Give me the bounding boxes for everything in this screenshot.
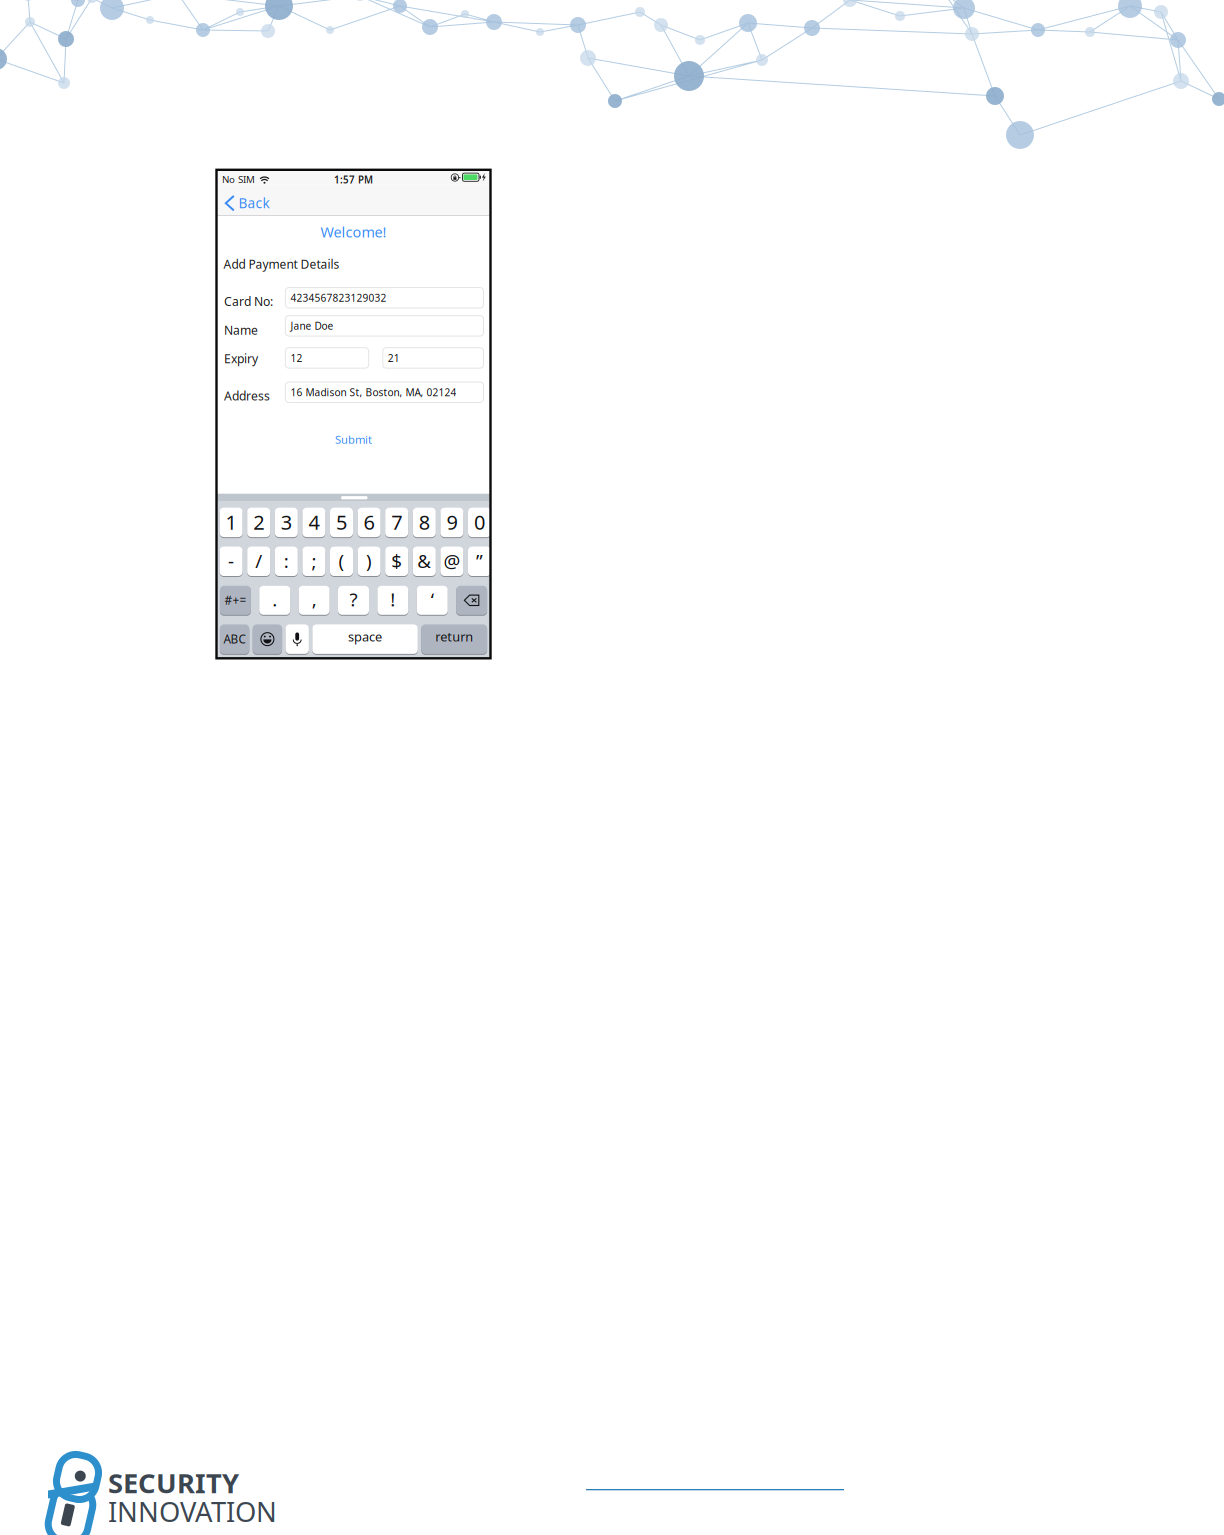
button[interactable]: 6 bbox=[358, 507, 381, 538]
button[interactable]: ; bbox=[302, 546, 325, 576]
staticText: - bbox=[228, 548, 234, 573]
button[interactable]: Submit bbox=[325, 427, 382, 452]
staticText: . bbox=[272, 587, 277, 612]
button[interactable]: $ bbox=[385, 546, 408, 576]
staticText: Welcome! bbox=[320, 222, 386, 242]
staticText: No SIM bbox=[222, 173, 255, 186]
staticText: @ bbox=[443, 548, 460, 573]
staticText: Card No: bbox=[224, 293, 273, 309]
staticText: 6 bbox=[364, 508, 375, 535]
button[interactable]: #+= bbox=[220, 585, 251, 615]
staticText: ; bbox=[311, 548, 316, 573]
staticText: ! bbox=[390, 587, 395, 612]
staticText: ABC bbox=[224, 631, 246, 647]
staticText: return bbox=[435, 628, 473, 645]
staticText: 9 bbox=[446, 508, 457, 535]
button[interactable]: ! bbox=[377, 585, 408, 615]
button[interactable]: - bbox=[220, 546, 243, 576]
button[interactable]: ‘ bbox=[417, 585, 448, 615]
staticText: 1:57 PM bbox=[334, 173, 373, 186]
staticText: 1 bbox=[226, 508, 237, 535]
staticText: ? bbox=[349, 587, 357, 612]
button[interactable]: 3 bbox=[275, 507, 298, 538]
button[interactable]: . bbox=[259, 585, 290, 615]
button[interactable]: & bbox=[413, 546, 436, 576]
button[interactable]: Emoji bbox=[253, 624, 282, 654]
button[interactable]: space bbox=[312, 624, 418, 654]
staticText: ( bbox=[338, 548, 344, 573]
button[interactable]: Delete bbox=[456, 585, 487, 615]
staticText: 0 bbox=[474, 508, 485, 535]
button[interactable]: 8 bbox=[413, 507, 436, 538]
staticText: ) bbox=[366, 548, 372, 573]
button[interactable]: 1 bbox=[220, 507, 243, 538]
button[interactable]: , bbox=[299, 585, 330, 615]
staticText: / bbox=[255, 548, 262, 573]
button[interactable]: ABC bbox=[220, 624, 249, 654]
button[interactable]: 0 bbox=[468, 507, 491, 538]
staticText: Add Payment Details bbox=[223, 256, 339, 272]
button[interactable]: 5 bbox=[330, 507, 353, 538]
button[interactable]: ( bbox=[330, 546, 353, 576]
staticText: & bbox=[417, 548, 431, 573]
button[interactable]: @ bbox=[440, 546, 463, 576]
staticText: 12 bbox=[290, 351, 302, 365]
staticText: Back bbox=[238, 194, 269, 212]
staticText: 2 bbox=[253, 508, 264, 535]
button[interactable]: 7 bbox=[385, 507, 408, 538]
button[interactable]: Back bbox=[216, 184, 277, 216]
staticText: 4 bbox=[308, 508, 319, 535]
staticText: 8 bbox=[419, 508, 430, 535]
staticText: 5 bbox=[336, 508, 347, 535]
staticText: Address bbox=[224, 388, 270, 404]
button[interactable]: return bbox=[421, 624, 487, 654]
staticText: 7 bbox=[391, 508, 402, 535]
staticText: ‘ bbox=[431, 587, 434, 612]
button[interactable]: ? bbox=[338, 585, 369, 615]
staticText: 21 bbox=[388, 351, 400, 365]
staticText: : bbox=[284, 548, 289, 573]
staticText: #+= bbox=[224, 592, 246, 608]
button[interactable]: : bbox=[275, 546, 298, 576]
button[interactable]: 2 bbox=[247, 507, 270, 538]
staticText: Submit bbox=[335, 432, 372, 447]
staticText: INNOVATION bbox=[108, 1493, 277, 1530]
staticText: space bbox=[348, 628, 382, 645]
button[interactable]: 9 bbox=[440, 507, 463, 538]
staticText: Name bbox=[224, 322, 258, 338]
button[interactable]: 4 bbox=[302, 507, 325, 538]
staticText: $ bbox=[391, 548, 402, 573]
staticText: 16 Madison St, Boston, MA, 02124 bbox=[290, 385, 456, 399]
staticText: Expiry bbox=[224, 350, 258, 367]
staticText: 4234567823129032 bbox=[290, 291, 386, 305]
button[interactable]: ” bbox=[468, 546, 491, 576]
staticText: SECURITY bbox=[108, 1464, 239, 1501]
button[interactable]: Dictation bbox=[285, 624, 309, 654]
staticText: , bbox=[312, 587, 317, 612]
staticText: ” bbox=[476, 548, 483, 573]
button[interactable]: / bbox=[247, 546, 270, 576]
staticText: Jane Doe bbox=[290, 319, 333, 333]
staticText: 3 bbox=[281, 508, 292, 535]
button[interactable]: ) bbox=[358, 546, 381, 576]
